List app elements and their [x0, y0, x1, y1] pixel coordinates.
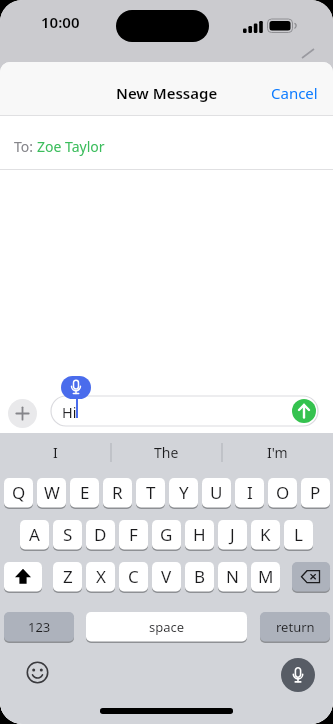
- staticText: Zoe Taylor: [37, 137, 105, 156]
- staticText: B: [194, 565, 206, 588]
- staticText: D: [94, 523, 107, 546]
- button[interactable]: I'm: [222, 437, 333, 467]
- staticText: E: [80, 481, 90, 504]
- button[interactable]: I: [235, 478, 264, 509]
- button[interactable]: Cancel: [260, 62, 333, 115]
- button[interactable]: B: [185, 562, 214, 593]
- staticText: A: [29, 523, 40, 546]
- button[interactable]: W: [37, 478, 66, 509]
- button[interactable]: S: [53, 520, 82, 551]
- staticText: Y: [179, 481, 189, 504]
- button[interactable]: T: [136, 478, 165, 509]
- button[interactable]: [61, 376, 91, 399]
- button[interactable]: [292, 399, 316, 423]
- staticText: Hi: [62, 402, 77, 422]
- button[interactable]: F: [119, 520, 148, 551]
- button[interactable]: U: [202, 478, 231, 509]
- staticText: New Message: [116, 83, 218, 103]
- staticText: U: [210, 481, 223, 504]
- staticText: L: [294, 523, 303, 546]
- button[interactable]: [22, 657, 53, 688]
- button[interactable]: P: [301, 478, 330, 509]
- staticText: I'm: [267, 443, 288, 462]
- button[interactable]: A: [20, 520, 49, 551]
- staticText: F: [129, 523, 138, 546]
- button[interactable]: I: [0, 437, 111, 467]
- button[interactable]: H: [185, 520, 214, 551]
- staticText: C: [128, 565, 139, 588]
- button[interactable]: C: [119, 562, 148, 593]
- button[interactable]: The: [111, 437, 222, 467]
- button[interactable]: Z: [53, 562, 82, 593]
- staticText: N: [226, 565, 239, 588]
- button[interactable]: G: [152, 520, 181, 551]
- staticText: P: [310, 481, 321, 504]
- button[interactable]: V: [152, 562, 181, 593]
- staticText: The: [154, 443, 179, 462]
- staticText: T: [146, 481, 156, 504]
- button[interactable]: To:: [0, 116, 333, 169]
- staticText: X: [96, 565, 106, 588]
- staticText: return: [276, 618, 315, 636]
- button[interactable]: Hi: [51, 396, 318, 426]
- staticText: V: [161, 565, 172, 588]
- button[interactable]: R: [103, 478, 132, 509]
- staticText: 10:00: [41, 12, 80, 32]
- button[interactable]: M: [251, 562, 280, 593]
- button[interactable]: J: [218, 520, 247, 551]
- button[interactable]: [4, 562, 42, 593]
- staticText: M: [258, 565, 274, 588]
- staticText: O: [276, 481, 290, 504]
- button[interactable]: K: [251, 520, 280, 551]
- button[interactable]: [8, 399, 37, 428]
- staticText: K: [260, 523, 271, 546]
- staticText: R: [112, 481, 123, 504]
- staticText: H: [193, 523, 206, 546]
- staticText: I: [247, 481, 253, 504]
- staticText: Cancel: [271, 83, 318, 103]
- button[interactable]: space: [86, 612, 247, 643]
- button[interactable]: X: [86, 562, 115, 593]
- button[interactable]: L: [284, 520, 313, 551]
- staticText: G: [160, 523, 173, 546]
- staticText: S: [63, 523, 73, 546]
- button[interactable]: return: [260, 612, 330, 643]
- button[interactable]: [292, 562, 330, 593]
- staticText: I: [53, 443, 58, 462]
- button[interactable]: E: [70, 478, 99, 509]
- button[interactable]: Q: [4, 478, 33, 509]
- staticText: Q: [12, 481, 26, 504]
- staticText: space: [149, 618, 185, 636]
- button[interactable]: O: [268, 478, 297, 509]
- staticText: To:: [14, 137, 37, 156]
- button[interactable]: N: [218, 562, 247, 593]
- button[interactable]: 123: [4, 612, 74, 643]
- button[interactable]: [281, 658, 315, 692]
- staticText: 123: [28, 618, 51, 636]
- staticText: Z: [63, 565, 73, 588]
- staticText: W: [44, 481, 60, 504]
- button[interactable]: Y: [169, 478, 198, 509]
- staticText: J: [230, 523, 235, 546]
- button[interactable]: D: [86, 520, 115, 551]
